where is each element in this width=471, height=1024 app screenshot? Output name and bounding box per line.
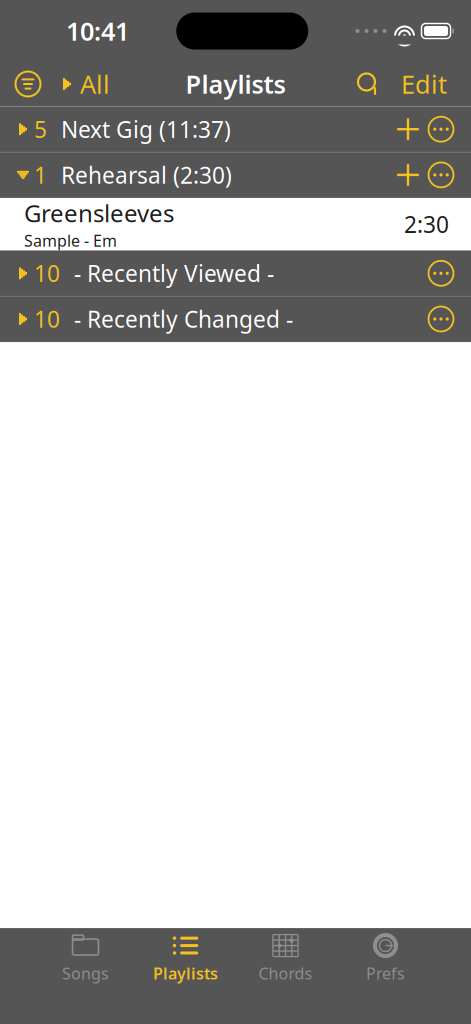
staticText: 1 — [34, 160, 47, 190]
staticText: Prefs — [366, 963, 405, 984]
button[interactable]: Edit — [393, 64, 455, 104]
staticText: Rehearsal (2:30) — [61, 160, 232, 190]
staticText: 10 — [34, 258, 60, 288]
staticText: Songs — [62, 963, 109, 984]
staticText: 5 — [34, 114, 47, 144]
button[interactable]: 10 — [0, 251, 471, 296]
button[interactable]: 5 — [0, 107, 471, 152]
staticText: Chords — [258, 963, 312, 984]
staticText: Playlists — [185, 67, 285, 101]
staticText: Edit — [401, 67, 447, 101]
staticText: 10:41 — [66, 14, 129, 48]
staticText: Greensleeves — [24, 197, 174, 229]
staticText: - Recently Viewed - — [74, 258, 274, 288]
button[interactable]: Songs — [35, 931, 135, 987]
staticText: 2:30 — [404, 209, 449, 239]
button[interactable]: Menu — [14, 70, 42, 98]
button[interactable]: All — [54, 64, 116, 104]
button[interactable]: Playlists — [135, 931, 235, 987]
button[interactable]: Prefs — [335, 931, 435, 987]
staticText: Sample - Em — [24, 230, 117, 251]
button[interactable]: Search — [355, 71, 381, 97]
staticText: Next Gig (11:37) — [61, 114, 231, 144]
button[interactable]: 1 — [0, 152, 471, 198]
staticText: All — [80, 67, 110, 101]
button[interactable]: Chords — [235, 931, 335, 987]
button[interactable]: Greensleeves — [0, 198, 471, 251]
staticText: 10 — [34, 304, 60, 334]
staticText: - Recently Changed - — [74, 304, 293, 334]
button[interactable]: 10 — [0, 296, 471, 342]
staticText: Playlists — [153, 963, 218, 984]
